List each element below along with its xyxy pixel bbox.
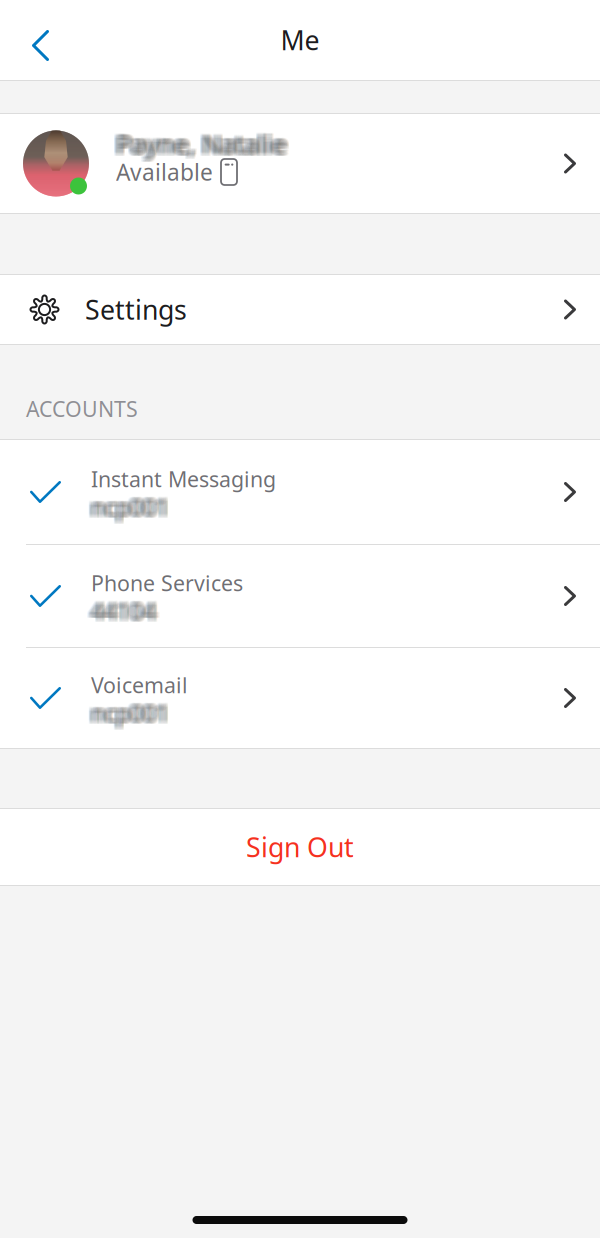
staticText: ncp001 — [90, 697, 168, 727]
staticText: ncp001 — [92, 490, 170, 520]
button[interactable]: Instant Messaging — [0, 440, 600, 544]
staticText: 44104 — [93, 594, 158, 624]
staticText: ncp001 — [92, 493, 170, 523]
staticText: 44104 — [94, 594, 159, 624]
button[interactable]: Sign Out — [0, 809, 600, 885]
staticText: ncp001 — [89, 493, 167, 523]
staticText: ncp001 — [87, 493, 165, 523]
staticText: Payne, Natalie — [117, 128, 287, 161]
staticText: ncp001 — [88, 494, 166, 524]
staticText: Phone Services — [91, 569, 243, 597]
staticText: Payne, Natalie — [118, 128, 288, 161]
staticText: Payne, Natalie — [113, 128, 283, 161]
staticText: 44104 — [88, 595, 153, 625]
staticText: ncp001 — [89, 490, 167, 520]
staticText: ncp001 — [87, 494, 165, 524]
staticText: 44104 — [88, 594, 153, 624]
staticText: 44104 — [94, 597, 159, 627]
staticText: ncp001 — [94, 490, 172, 520]
staticText: 44104 — [89, 595, 154, 625]
staticText: 44104 — [92, 594, 157, 624]
staticText: ncp001 — [88, 490, 166, 520]
staticText: Sign Out — [246, 829, 354, 865]
staticText: Payne, Natalie — [120, 129, 290, 163]
staticText: ncp001 — [93, 490, 171, 520]
button[interactable]: Voicemail — [0, 648, 600, 748]
staticText: 44104 — [90, 598, 155, 628]
staticText: Payne, Natalie — [117, 126, 287, 160]
staticText: ncp001 — [94, 494, 172, 524]
staticText: ncp001 — [88, 699, 166, 729]
staticText: Payne, Natalie — [118, 129, 288, 163]
button[interactable]: Payne, Natalie — [0, 114, 600, 213]
staticText: ncp001 — [95, 700, 173, 730]
staticText: Payne, Natalie — [117, 125, 287, 159]
staticText: ncp001 — [90, 696, 168, 726]
staticText: Payne, Natalie — [119, 126, 289, 160]
staticText: ncp001 — [90, 491, 168, 521]
staticText: ncp001 — [90, 700, 168, 730]
staticText: ncp001 — [90, 494, 168, 524]
staticText: Settings — [85, 292, 187, 327]
staticText: 44104 — [92, 598, 157, 628]
staticText: Payne, Natalie — [112, 129, 282, 163]
staticText: Instant Messaging — [91, 465, 276, 493]
staticText: 44104 — [87, 594, 152, 624]
staticText: ncp001 — [93, 696, 171, 726]
staticText: ncp001 — [92, 700, 170, 730]
staticText: 44104 — [93, 598, 158, 628]
staticText: ncp001 — [87, 700, 165, 730]
staticText: Payne, Natalie — [112, 125, 282, 159]
staticText: 44104 — [95, 594, 160, 624]
staticText: 44104 — [88, 597, 153, 627]
staticText: 44104 — [88, 598, 153, 628]
staticText: ncp001 — [90, 493, 168, 523]
staticText: Payne, Natalie — [114, 128, 284, 161]
staticText: Me — [280, 22, 319, 58]
staticText: ncp001 — [95, 490, 173, 520]
staticText: Payne, Natalie — [118, 125, 288, 159]
staticText: ncp001 — [95, 491, 173, 521]
staticText: ncp001 — [93, 700, 171, 730]
staticText: ncp001 — [95, 699, 173, 729]
staticText: ncp001 — [87, 490, 165, 520]
staticText: 44104 — [89, 594, 154, 624]
staticText: 44104 — [95, 595, 160, 625]
staticText: ncp001 — [93, 494, 171, 524]
staticText: ncp001 — [90, 699, 168, 729]
staticText: Voicemail — [91, 671, 188, 699]
staticText: ncp001 — [89, 699, 167, 729]
staticText: ncp001 — [92, 697, 170, 727]
staticText: ncp001 — [94, 696, 172, 726]
staticText: 44104 — [89, 598, 154, 628]
button[interactable]: Settings — [0, 275, 600, 344]
staticText: ncp001 — [95, 493, 173, 523]
staticText: ncp001 — [87, 697, 165, 727]
staticText: 44104 — [95, 598, 160, 628]
staticText: ncp001 — [92, 699, 170, 729]
staticText: Payne, Natalie — [119, 125, 289, 159]
button[interactable]: Back — [0, 0, 92, 80]
staticText: ACCOUNTS — [26, 395, 138, 423]
staticText: ncp001 — [95, 697, 173, 727]
staticText: Payne, Natalie — [112, 128, 282, 161]
staticText: 44104 — [95, 597, 160, 627]
staticText: Payne, Natalie — [119, 128, 289, 161]
staticText: 44104 — [92, 595, 157, 625]
staticText: ncp001 — [93, 699, 171, 729]
button[interactable]: Phone Services — [0, 545, 600, 647]
staticText: Payne, Natalie — [115, 126, 285, 160]
staticText: ncp001 — [87, 491, 165, 521]
staticText: Payne, Natalie — [120, 126, 290, 160]
staticText: ncp001 — [89, 494, 167, 524]
staticText: 44104 — [90, 595, 155, 625]
staticText: Payne, Natalie — [112, 126, 282, 160]
staticText: Payne, Natalie — [115, 129, 285, 163]
staticText: 44104 — [90, 594, 155, 624]
staticText: Payne, Natalie — [118, 126, 288, 160]
staticText: Payne, Natalie — [113, 126, 283, 160]
staticText: ncp001 — [89, 491, 167, 521]
staticText: Payne, Natalie — [117, 129, 287, 163]
staticText: 44104 — [87, 595, 152, 625]
staticText: 44104 — [93, 595, 158, 625]
